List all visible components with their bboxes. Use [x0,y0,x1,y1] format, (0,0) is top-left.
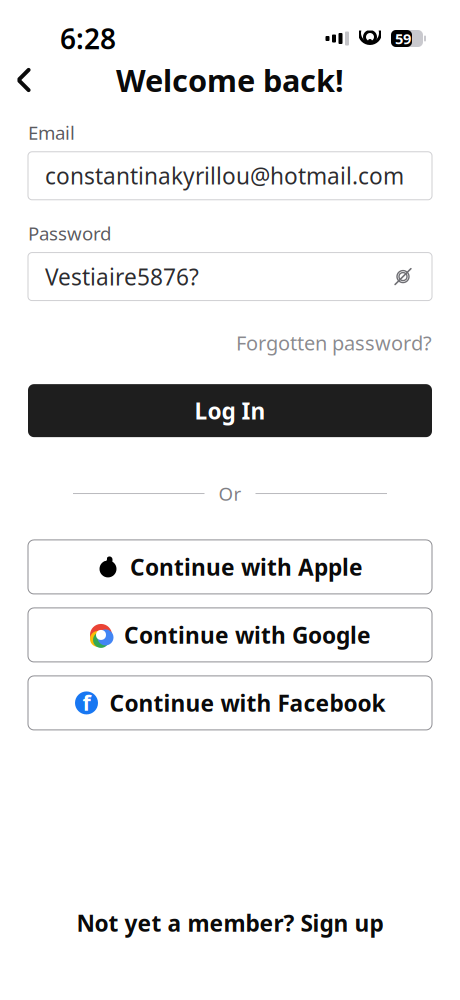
button[interactable]: f [28,676,432,730]
staticText: Email [28,120,75,145]
button[interactable]: Show password [383,257,423,297]
staticText: Forgotten password? [236,330,432,356]
staticText: Welcome back! [116,60,344,100]
button[interactable]: Continue with Apple [28,540,432,594]
button[interactable]: Continue with Google [28,608,432,662]
staticText: f [82,688,90,717]
staticText: 59 [395,29,411,48]
staticText: Continue with Facebook [109,688,385,718]
staticText: Vestiaire5876? [45,261,199,292]
staticText: Or [218,481,241,506]
staticText: Continue with Google [124,620,371,650]
staticText: 6:28 [60,20,116,57]
staticText: Password [28,221,111,246]
staticText: constantinakyrillou@hotmail.com [45,161,404,191]
button[interactable]: Log In [28,384,432,437]
staticText: Continue with Apple [130,552,363,582]
button[interactable]: Forgotten password? [236,324,432,362]
button[interactable]: Back [0,58,48,102]
button[interactable]: Not yet a member? Sign up [56,898,403,948]
staticText: Not yet a member? Sign up [76,908,383,938]
staticText: Log In [194,396,265,426]
